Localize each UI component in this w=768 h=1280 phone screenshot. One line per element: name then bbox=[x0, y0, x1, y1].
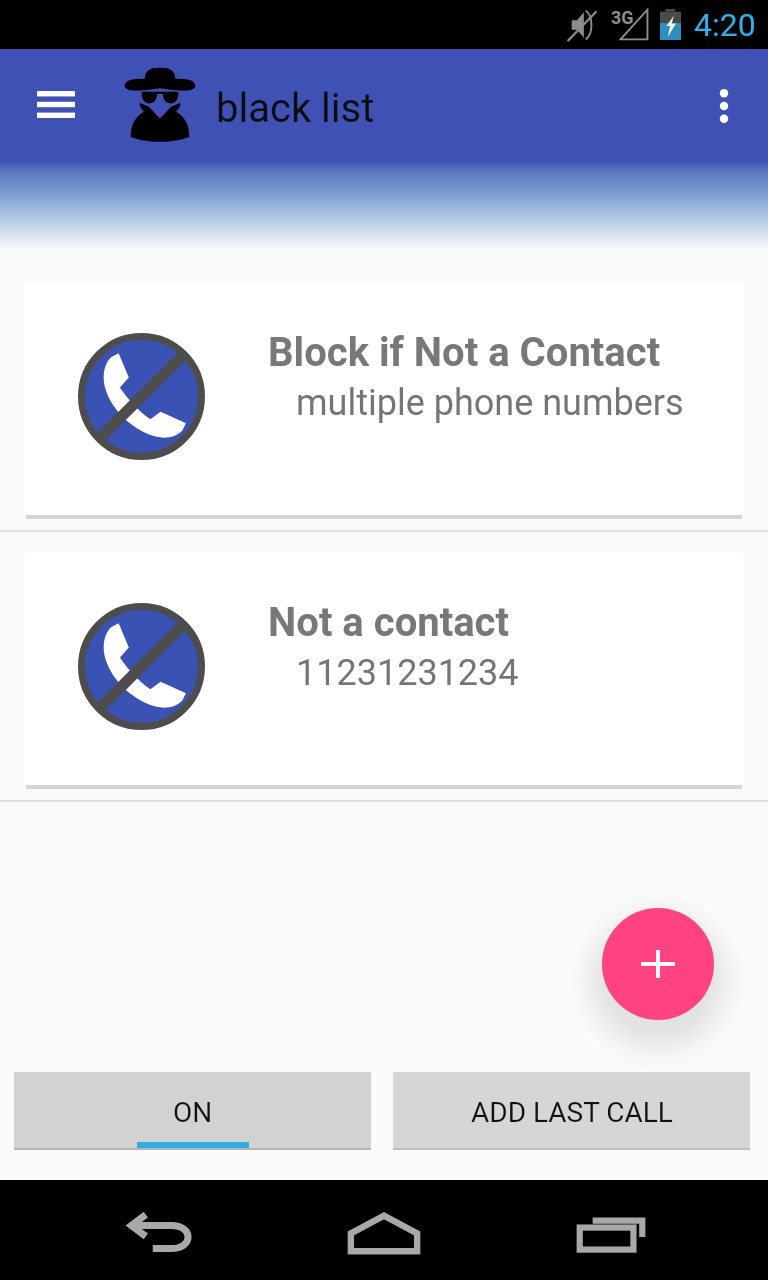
button[interactable]: ADD LAST CALL bbox=[393, 1072, 750, 1148]
staticText: multiple phone numbers bbox=[296, 382, 684, 424]
button[interactable]: Block if Not a Contact bbox=[24, 282, 744, 515]
button[interactable]: Add bbox=[602, 908, 714, 1020]
button[interactable]: Back bbox=[123, 1213, 201, 1257]
staticText: Not a contact bbox=[268, 599, 510, 646]
staticText: black list bbox=[216, 85, 375, 132]
staticText: 3G bbox=[611, 7, 634, 28]
button[interactable]: Menu bbox=[37, 91, 75, 118]
staticText: 4:20 bbox=[694, 6, 756, 44]
button[interactable]: More options bbox=[708, 81, 740, 131]
staticText: ON bbox=[173, 1096, 213, 1129]
button[interactable]: Not a contact bbox=[24, 552, 744, 785]
staticText: 11231231234 bbox=[296, 652, 519, 694]
staticText: Block if Not a Contact bbox=[268, 329, 661, 376]
button[interactable]: Recents bbox=[571, 1211, 651, 1255]
button[interactable]: Home bbox=[342, 1211, 426, 1255]
staticText: ADD LAST CALL bbox=[471, 1096, 673, 1129]
button[interactable]: ON bbox=[14, 1072, 371, 1148]
